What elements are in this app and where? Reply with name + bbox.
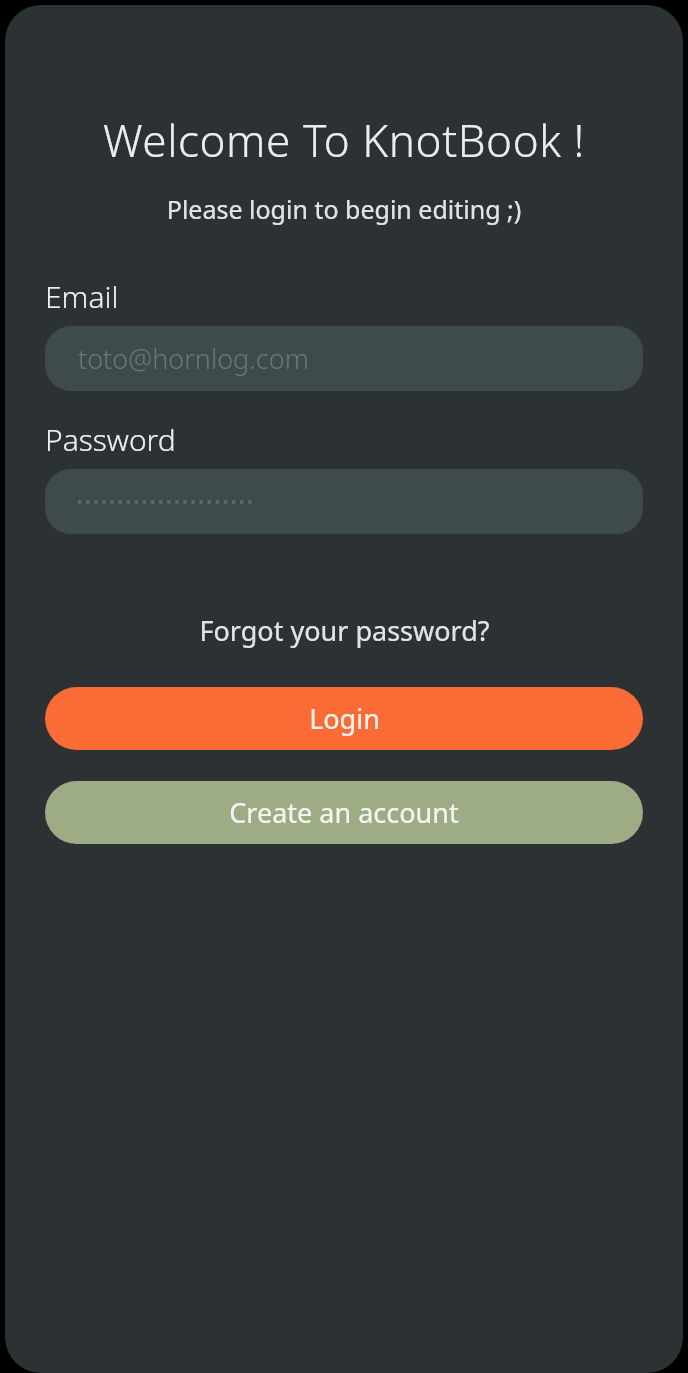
button[interactable] [45,469,643,534]
staticText: Create an account [229,794,459,831]
button[interactable]: Login [45,687,643,750]
button[interactable]: Create an account [45,781,643,844]
staticText: Email [45,276,119,317]
staticText: Please login to begin editing ;) [5,192,683,226]
staticText: Welcome To KnotBook ! [5,110,683,170]
button[interactable]: toto@hornlog.com [45,326,643,391]
button[interactable]: Forgot your password? [5,612,683,649]
staticText: Password [45,419,176,460]
staticText: Login [309,700,380,737]
staticText: toto@hornlog.com [78,340,309,377]
staticText: Forgot your password? [199,612,490,649]
